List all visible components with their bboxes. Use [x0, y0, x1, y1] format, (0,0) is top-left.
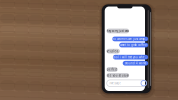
staticText: want to grab coffee: [120, 43, 147, 47]
button[interactable]: hey sorry just saw: [106, 29, 129, 33]
staticText: perfect: [107, 68, 117, 71]
staticText: cool i will text you when out: [113, 55, 148, 59]
button[interactable]: want to grab coffee: [119, 43, 148, 47]
staticText: iMessage: [109, 81, 121, 85]
button[interactable]: see you at usual: [106, 73, 129, 78]
staticText: around 4 works: [125, 61, 146, 65]
staticText: hey sorry just saw: [107, 29, 129, 33]
button[interactable]: Message field: [107, 80, 147, 86]
staticText: no worries we just wrapped up: [112, 37, 148, 41]
button[interactable]: Send: [141, 80, 146, 86]
button[interactable]: around 4 works: [123, 61, 148, 66]
button[interactable]: perfect: [106, 67, 118, 72]
button[interactable]: no worries we just wrapped up: [112, 37, 148, 41]
staticText: see you at usual: [107, 74, 129, 77]
staticText: yes please: [106, 49, 120, 53]
button[interactable]: cool i will text you when out: [113, 55, 148, 59]
button[interactable]: yes please: [106, 49, 120, 53]
